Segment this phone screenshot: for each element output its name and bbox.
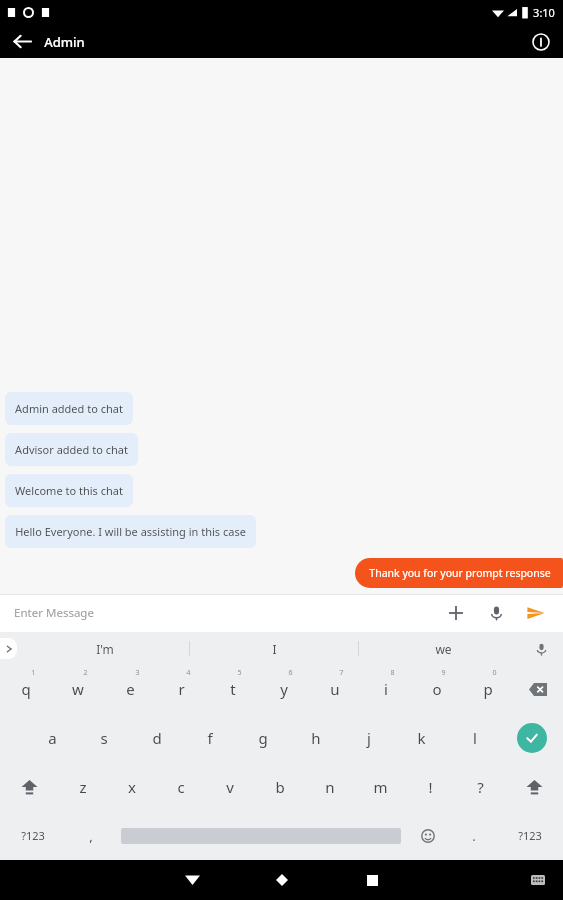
button[interactable]: Emoji bbox=[405, 811, 451, 860]
button[interactable]: c bbox=[156, 762, 205, 811]
staticText: q bbox=[21, 679, 31, 699]
staticText: c bbox=[177, 777, 185, 797]
button[interactable]: i bbox=[360, 665, 411, 713]
staticText: y bbox=[280, 679, 288, 699]
button[interactable]: m bbox=[355, 762, 405, 811]
staticText: e bbox=[126, 679, 135, 699]
staticText: 7 bbox=[339, 668, 344, 678]
button[interactable]: f bbox=[183, 713, 236, 762]
staticText: 0 bbox=[492, 668, 497, 678]
button[interactable]: Admin added to chat bbox=[5, 392, 133, 425]
staticText: w bbox=[72, 679, 84, 699]
button[interactable]: Switch keyboard bbox=[525, 867, 551, 893]
button[interactable]: ? bbox=[455, 762, 505, 811]
staticText: f bbox=[207, 728, 213, 748]
staticText: d bbox=[152, 728, 162, 748]
staticText: ?123 bbox=[518, 828, 542, 843]
button[interactable]: ?123 bbox=[497, 811, 563, 860]
staticText: . bbox=[472, 827, 476, 845]
staticText: k bbox=[417, 728, 426, 748]
button[interactable]: r bbox=[156, 665, 207, 713]
button[interactable]: o bbox=[411, 665, 462, 713]
staticText: I bbox=[272, 641, 277, 657]
staticText: Admin added to chat bbox=[15, 401, 123, 416]
button[interactable]: Comma bbox=[66, 811, 116, 860]
staticText: a bbox=[48, 728, 57, 748]
staticText: 3:10 bbox=[533, 5, 555, 20]
staticText: u bbox=[330, 679, 340, 699]
button[interactable]: g bbox=[236, 713, 289, 762]
staticText: b bbox=[275, 777, 285, 797]
staticText: i bbox=[384, 679, 388, 699]
button[interactable]: Hello Everyone. I will be assisting in t… bbox=[5, 515, 256, 548]
button[interactable]: j bbox=[342, 713, 395, 762]
staticText: t bbox=[230, 679, 236, 699]
button[interactable]: s bbox=[78, 713, 130, 762]
button[interactable]: q bbox=[0, 665, 52, 713]
button[interactable]: p bbox=[462, 665, 513, 713]
staticText: 8 bbox=[390, 668, 395, 678]
button[interactable]: l bbox=[448, 713, 501, 762]
button[interactable]: u bbox=[309, 665, 360, 713]
button[interactable]: d bbox=[130, 713, 183, 762]
button[interactable]: w bbox=[52, 665, 104, 713]
button[interactable]: Voice typing bbox=[529, 637, 553, 661]
button[interactable]: Enter bbox=[501, 713, 563, 762]
button[interactable]: I'm bbox=[20, 632, 189, 665]
staticText: , bbox=[89, 827, 93, 845]
staticText: m bbox=[373, 777, 388, 797]
staticText: o bbox=[432, 679, 442, 699]
button[interactable]: Space bbox=[116, 811, 405, 860]
staticText: ! bbox=[428, 777, 433, 797]
staticText: ? bbox=[477, 777, 484, 797]
staticText: j bbox=[367, 728, 371, 748]
button[interactable]: v bbox=[205, 762, 255, 811]
button[interactable]: t bbox=[207, 665, 258, 713]
button[interactable]: I bbox=[190, 632, 358, 665]
staticText: Advisor added to chat bbox=[15, 442, 128, 457]
staticText: Admin bbox=[44, 33, 85, 51]
button[interactable]: Period bbox=[451, 811, 497, 860]
staticText: 9 bbox=[441, 668, 446, 678]
button[interactable]: Hide keyboard bbox=[166, 860, 218, 900]
button[interactable]: Backspace bbox=[513, 665, 563, 713]
button[interactable]: we bbox=[359, 632, 527, 665]
staticText: l bbox=[473, 728, 477, 748]
button[interactable]: Home bbox=[256, 860, 308, 900]
button[interactable]: x bbox=[107, 762, 156, 811]
staticText: I'm bbox=[96, 641, 114, 657]
button[interactable]: Advisor added to chat bbox=[5, 433, 138, 466]
staticText: g bbox=[258, 728, 268, 748]
button[interactable]: Thank you for your prompt response bbox=[355, 558, 563, 588]
button[interactable]: z bbox=[58, 762, 107, 811]
staticText: Thank you for your prompt response bbox=[369, 566, 551, 580]
button[interactable]: Shift bbox=[505, 762, 563, 811]
staticText: Welcome to this chat bbox=[15, 483, 123, 498]
button[interactable]: Attach bbox=[443, 600, 469, 626]
button[interactable]: e bbox=[104, 665, 156, 713]
button[interactable]: Back bbox=[0, 25, 44, 58]
button[interactable]: a bbox=[26, 713, 78, 762]
button[interactable]: ?123 bbox=[0, 811, 66, 860]
button[interactable]: k bbox=[395, 713, 448, 762]
button[interactable]: ! bbox=[405, 762, 455, 811]
staticText: v bbox=[226, 777, 234, 797]
staticText: n bbox=[325, 777, 335, 797]
button[interactable]: Send bbox=[523, 600, 549, 626]
staticText: 2 bbox=[83, 668, 88, 678]
button[interactable]: Shift bbox=[0, 762, 58, 811]
button[interactable]: b bbox=[255, 762, 305, 811]
staticText: r bbox=[178, 679, 185, 699]
button[interactable]: Recents bbox=[346, 860, 398, 900]
button[interactable]: Welcome to this chat bbox=[5, 474, 133, 507]
staticText: Enter Message bbox=[14, 605, 94, 621]
button[interactable]: Expand suggestions bbox=[0, 638, 17, 659]
staticText: h bbox=[311, 728, 321, 748]
staticText: 3 bbox=[135, 668, 140, 678]
button[interactable]: Voice input bbox=[483, 600, 509, 626]
button[interactable]: Info bbox=[519, 25, 563, 58]
button[interactable]: h bbox=[289, 713, 342, 762]
button[interactable]: y bbox=[258, 665, 309, 713]
staticText: z bbox=[79, 777, 87, 797]
button[interactable]: n bbox=[305, 762, 355, 811]
